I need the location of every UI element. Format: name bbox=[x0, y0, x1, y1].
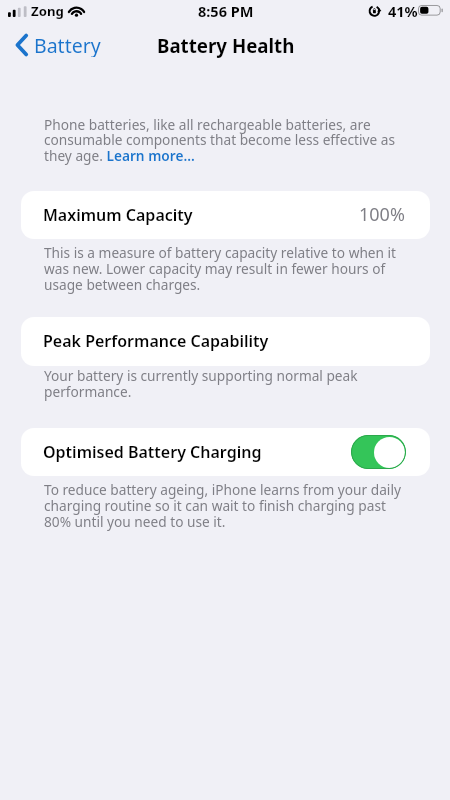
staticText: Peak Performance Capability bbox=[43, 330, 269, 352]
button[interactable]: Peak Performance Capability bbox=[21, 317, 430, 366]
other: Cellular signal bbox=[8, 6, 25, 17]
staticText: Battery Health bbox=[157, 33, 295, 58]
staticText: Your battery is currently supporting nor… bbox=[44, 366, 402, 401]
other: Wi-Fi bbox=[67, 5, 86, 16]
other: Rotation lock bbox=[369, 5, 381, 17]
staticText: Optimised Battery Charging bbox=[43, 441, 262, 463]
button[interactable]: Maximum Capacity bbox=[21, 191, 430, 239]
staticText: 8:56 PM bbox=[198, 1, 254, 21]
other: Battery 41 percent bbox=[418, 5, 445, 16]
staticText: Battery bbox=[34, 32, 101, 57]
staticText: Phone batteries, like all rechargeable b… bbox=[44, 115, 402, 165]
button[interactable]: Optimised Battery Charging toggle bbox=[351, 435, 406, 469]
staticText: To reduce battery ageing, iPhone learns … bbox=[44, 480, 402, 531]
staticText: 41% bbox=[388, 1, 418, 21]
staticText: Zong bbox=[31, 2, 64, 20]
button[interactable]: Battery bbox=[10, 32, 109, 57]
staticText: 100% bbox=[359, 202, 405, 227]
staticText: This is a measure of battery capacity re… bbox=[44, 243, 402, 294]
staticText: Maximum Capacity bbox=[43, 204, 193, 226]
button[interactable]: Optimised Battery Charging bbox=[21, 428, 430, 476]
